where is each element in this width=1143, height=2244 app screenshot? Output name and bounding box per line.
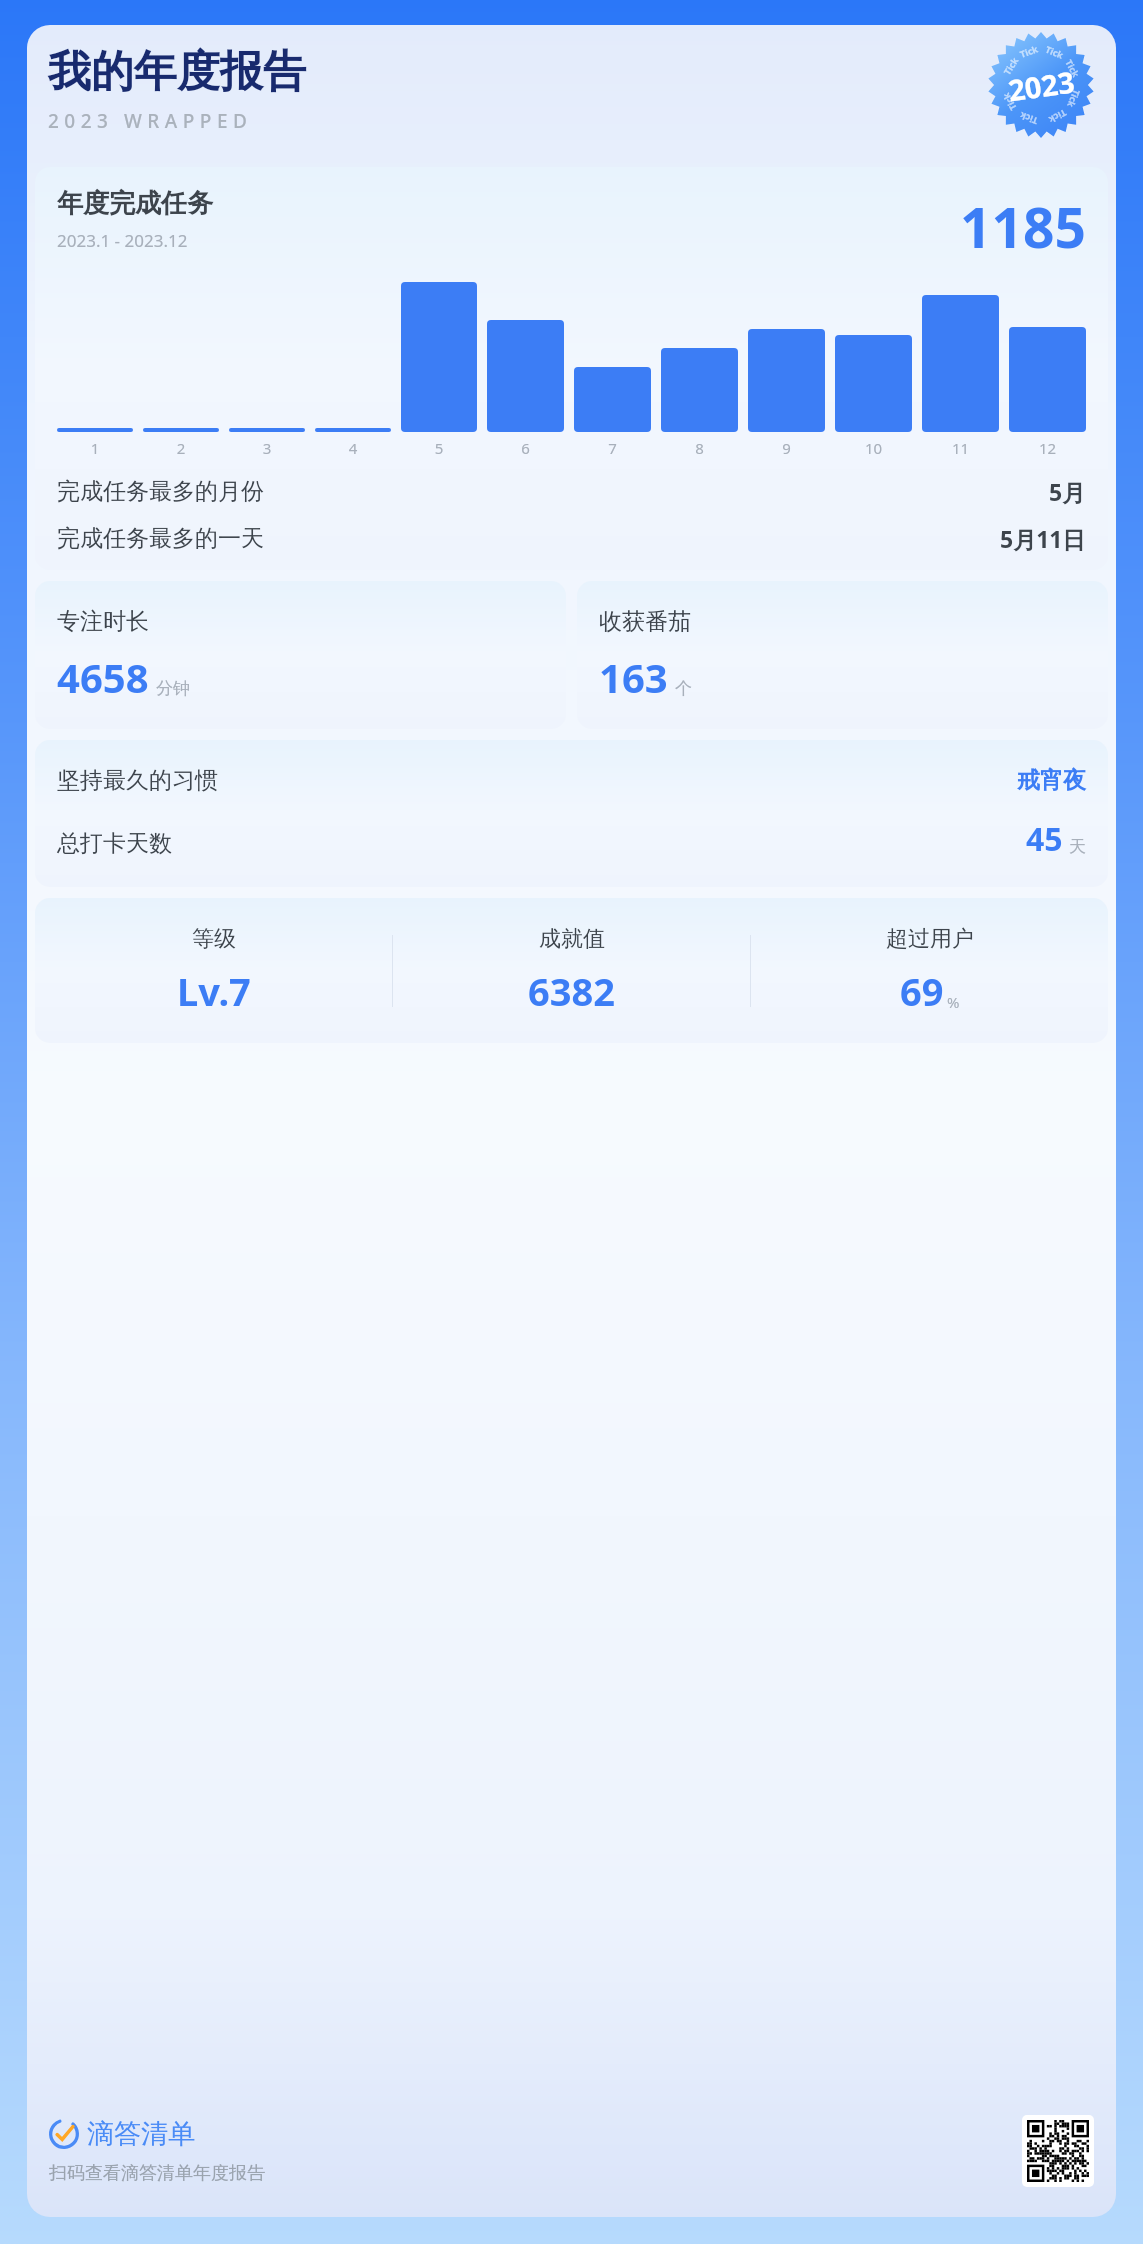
button[interactable]: 超过用户 (751, 925, 1108, 1017)
staticText: 12 (1009, 438, 1086, 458)
staticText: 天 (1069, 836, 1086, 857)
staticText: 专注时长 (57, 607, 149, 636)
other: TickTick logo (49, 2119, 79, 2149)
staticText: 4658 (57, 650, 149, 704)
staticText: Tick (1065, 88, 1083, 110)
button[interactable]: 专注时长 (35, 581, 566, 729)
button[interactable]: 收获番茄 (577, 581, 1108, 729)
button[interactable]: 完成任务最多的一天 (57, 523, 1086, 554)
staticText: 6 (487, 438, 564, 458)
button[interactable]: 坚持最久的习惯 (35, 740, 1108, 887)
staticText: 滴答清单 (87, 2117, 195, 2151)
staticText: 等级 (192, 925, 236, 953)
staticText: % (947, 992, 960, 1012)
staticText: 2023.1 - 2023.12 (57, 229, 188, 252)
staticText: 分钟 (156, 678, 190, 699)
staticText: Tick (1017, 110, 1039, 128)
staticText: 1185 (960, 189, 1086, 264)
staticText: 5 (401, 438, 477, 458)
staticText: 4 (315, 438, 391, 458)
staticText: 45 (1026, 817, 1063, 861)
staticText: Tick (1063, 57, 1083, 80)
staticText: 我的年度报告 (48, 45, 306, 99)
staticText: 总打卡天数 (57, 829, 1026, 858)
staticText: 完成任务最多的一天 (57, 524, 1000, 553)
button[interactable]: 坚持最久的习惯 (57, 766, 1086, 795)
staticText: 年度完成任务 (57, 187, 213, 220)
staticText: 2023 (1006, 61, 1077, 109)
other: QR code (1027, 2120, 1089, 2182)
staticText: 2 (143, 438, 219, 458)
button[interactable]: 等级 (35, 898, 1108, 1043)
staticText: 收获番茄 (599, 607, 691, 636)
button[interactable]: 年度完成任务 (35, 167, 1108, 570)
staticText: Tick (1046, 107, 1069, 127)
staticText: 9 (748, 438, 825, 458)
staticText: 超过用户 (886, 925, 974, 953)
staticText: 69 (900, 965, 944, 1017)
staticText: Tick (1001, 54, 1021, 77)
staticText: 成就值 (539, 925, 605, 953)
staticText: 完成任务最多的月份 (57, 477, 1049, 506)
staticText: 1 (57, 438, 133, 458)
button[interactable]: TickTick logo (49, 2117, 195, 2151)
button[interactable]: 完成任务最多的月份 (57, 476, 1086, 507)
button[interactable]: 总打卡天数 (57, 817, 1086, 861)
staticText: 7 (574, 438, 651, 458)
button[interactable]: 等级 (35, 925, 392, 1017)
staticText: Tick (1044, 43, 1066, 61)
staticText: 2023 WRAPPED (48, 108, 253, 134)
staticText: 坚持最久的习惯 (57, 766, 1017, 795)
staticText: 11 (922, 438, 999, 458)
staticText: Tick (1018, 42, 1040, 60)
staticText: 163 (599, 650, 668, 704)
button[interactable]: 成就值 (393, 925, 750, 1017)
staticText: Tick (999, 90, 1019, 113)
staticText: 戒宵夜 (1017, 766, 1086, 795)
staticText: 5月 (1049, 476, 1086, 507)
staticText: 8 (661, 438, 738, 458)
staticText: 个 (675, 678, 692, 699)
staticText: 3 (229, 438, 305, 458)
staticText: Lv.7 (177, 965, 251, 1017)
staticText: 5月11日 (1000, 523, 1086, 554)
staticText: 6382 (528, 965, 615, 1017)
staticText: 扫码查看滴答清单年度报告 (49, 2162, 265, 2185)
staticText: 10 (835, 438, 912, 458)
